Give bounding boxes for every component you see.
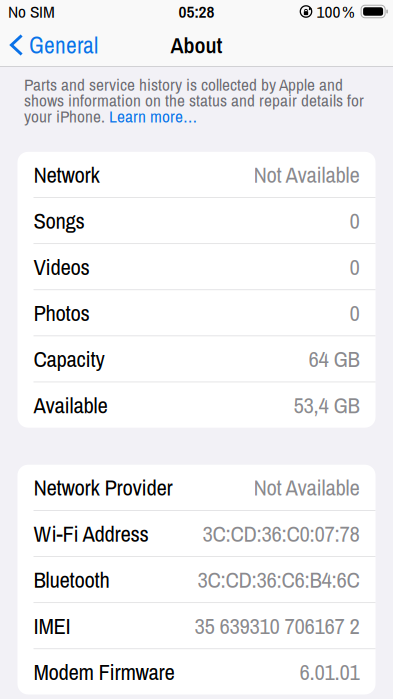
button[interactable]: Bluetooth: [17, 557, 375, 602]
staticText: 3C:CD:36:C6:B4:6C: [197, 564, 359, 595]
button[interactable]: IMEI: [17, 603, 375, 648]
button[interactable]: Songs: [17, 198, 375, 243]
staticText: your iPhone.: [24, 104, 109, 128]
staticText: 6.01.01: [299, 656, 359, 687]
staticText: Songs: [33, 205, 84, 236]
staticText: General: [29, 29, 98, 61]
staticText: 0: [349, 205, 359, 236]
button[interactable]: Available: [17, 382, 375, 428]
staticText: Videos: [33, 251, 89, 282]
button[interactable]: Network Provider: [17, 465, 375, 510]
staticText: Network Provider: [33, 472, 172, 503]
staticText: Parts and service history is collected b…: [24, 73, 343, 96]
staticText: Network: [33, 159, 99, 190]
button[interactable]: General: [0, 26, 106, 64]
staticText: Wi-Fi Address: [33, 518, 148, 549]
staticText: About: [170, 30, 222, 60]
staticText: Learn more…: [109, 104, 197, 128]
button[interactable]: Learn more…: [109, 104, 197, 128]
button[interactable]: Wi-Fi Address: [17, 511, 375, 556]
staticText: 05:28: [178, 0, 214, 23]
button[interactable]: Photos: [17, 290, 375, 335]
staticText: Available: [33, 390, 107, 420]
staticText: 53,4 GB: [293, 390, 359, 420]
staticText: 0: [349, 297, 359, 328]
staticText: Capacity: [33, 344, 104, 374]
staticText: Photos: [33, 297, 89, 328]
staticText: 3C:CD:36:C0:07:78: [202, 518, 359, 549]
button[interactable]: Modem Firmware: [17, 649, 375, 694]
button[interactable]: Videos: [17, 244, 375, 289]
staticText: No SIM: [8, 0, 55, 23]
staticText: Not Available: [253, 159, 359, 190]
staticText: 35 639310 706167 2: [194, 610, 359, 641]
staticText: Modem Firmware: [33, 656, 174, 687]
staticText: IMEI: [33, 610, 70, 641]
staticText: Not Available: [253, 472, 359, 503]
button[interactable]: Network: [17, 152, 375, 197]
staticText: %: [342, 0, 355, 23]
staticText: 100: [316, 0, 340, 23]
staticText: Bluetooth: [33, 564, 109, 595]
staticText: shows information on the status and repa…: [24, 89, 364, 112]
button[interactable]: Capacity: [17, 336, 375, 381]
staticText: 64 GB: [308, 344, 359, 374]
staticText: 0: [349, 251, 359, 282]
